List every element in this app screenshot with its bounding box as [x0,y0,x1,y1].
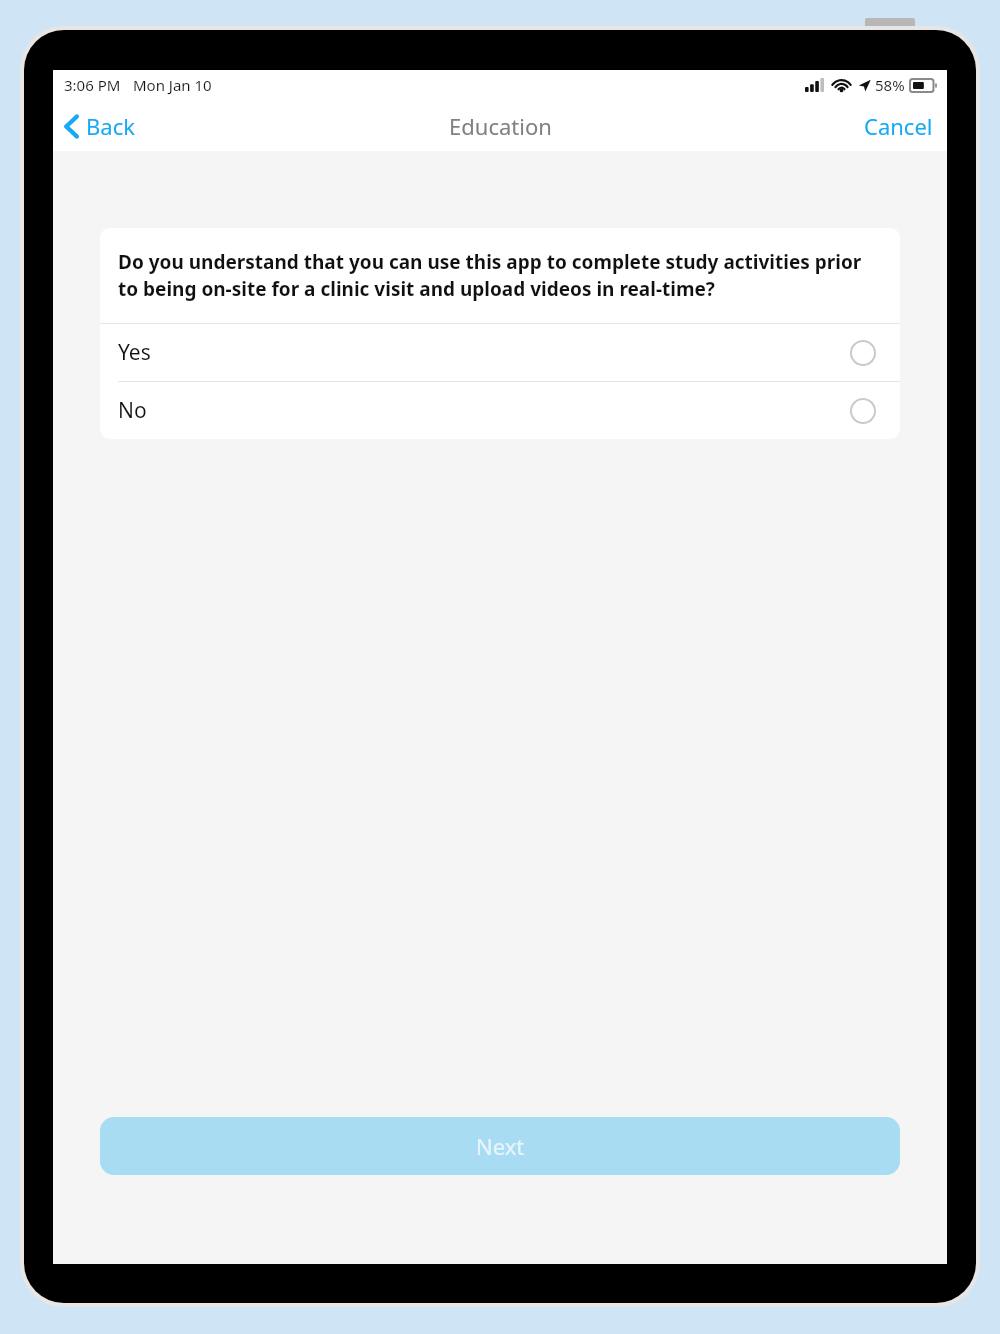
staticText: No [118,396,147,425]
staticText: Mon Jan 10 [133,75,212,95]
staticText: Yes [118,338,151,367]
staticText: Next [476,1131,525,1161]
staticText: Education [449,111,552,141]
button[interactable]: Cancel [850,105,947,147]
other: Battery 58 percent [910,79,937,92]
staticText: 3:06 PM [64,75,121,95]
staticText: Cancel [864,111,933,141]
button[interactable]: No [100,382,900,439]
other: Location [858,79,871,92]
other: Wi-Fi [832,78,851,92]
staticText: Do you understand that you can use this … [118,249,882,302]
button[interactable]: Back [53,105,149,147]
button[interactable]: Next [100,1117,900,1175]
other: Cellular signal [805,78,824,92]
staticText: 58% [875,75,905,95]
staticText: Back [86,111,135,141]
button[interactable]: Yes [100,324,900,381]
